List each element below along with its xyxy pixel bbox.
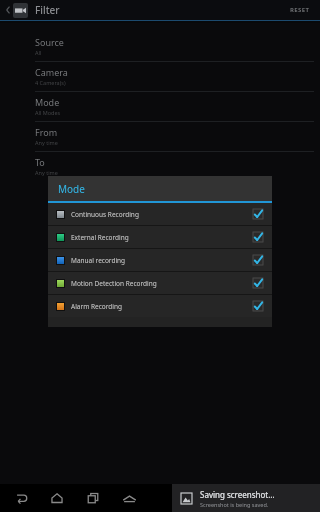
button[interactable]: Home: [44, 485, 70, 511]
staticText: All: [35, 49, 42, 56]
other: App icon: [13, 3, 28, 18]
button[interactable]: External Recording: [48, 226, 272, 248]
staticText: External Recording: [71, 233, 253, 242]
staticText: To: [35, 156, 45, 168]
staticText: Motion Detection Recording: [71, 279, 253, 288]
other: Selected: [253, 255, 263, 265]
staticText: Any time: [35, 139, 58, 146]
other: Selected: [253, 232, 263, 242]
staticText: Filter: [35, 3, 60, 17]
staticText: Manual recording: [71, 256, 253, 265]
button[interactable]: Recent apps: [80, 485, 106, 511]
button[interactable]: Back: [8, 485, 34, 511]
staticText: 4 Camera(s): [35, 79, 66, 86]
other: Selected: [253, 278, 263, 288]
staticText: Alarm Recording: [71, 302, 253, 311]
staticText: Camera: [35, 66, 68, 78]
staticText: Any time: [35, 169, 58, 176]
staticText: Mode: [35, 96, 60, 108]
staticText: Saving screenshot…: [200, 489, 275, 500]
button[interactable]: Manual recording: [48, 249, 272, 271]
button[interactable]: Mode: [9, 92, 320, 121]
other: Selected: [253, 301, 263, 311]
button[interactable]: Hide: [116, 485, 142, 511]
button[interactable]: RESET: [282, 2, 318, 18]
staticText: Continuous Recording: [71, 210, 253, 219]
button[interactable]: Saving screenshot…: [172, 484, 320, 512]
button[interactable]: Motion Detection Recording: [48, 272, 272, 294]
staticText: Source: [35, 36, 64, 48]
button[interactable]: Camera: [9, 62, 320, 91]
button[interactable]: Alarm Recording: [48, 295, 272, 317]
staticText: Screenshot is being saved.: [200, 501, 269, 508]
staticText: From: [35, 126, 58, 138]
staticText: RESET: [290, 6, 310, 14]
button[interactable]: Continuous Recording: [48, 203, 272, 225]
other: Selected: [253, 209, 263, 219]
button[interactable]: Source: [9, 32, 320, 61]
staticText: All Modes: [35, 109, 61, 116]
button[interactable]: From: [9, 122, 320, 151]
staticText: Mode: [58, 182, 85, 196]
button[interactable]: To: [9, 152, 320, 181]
